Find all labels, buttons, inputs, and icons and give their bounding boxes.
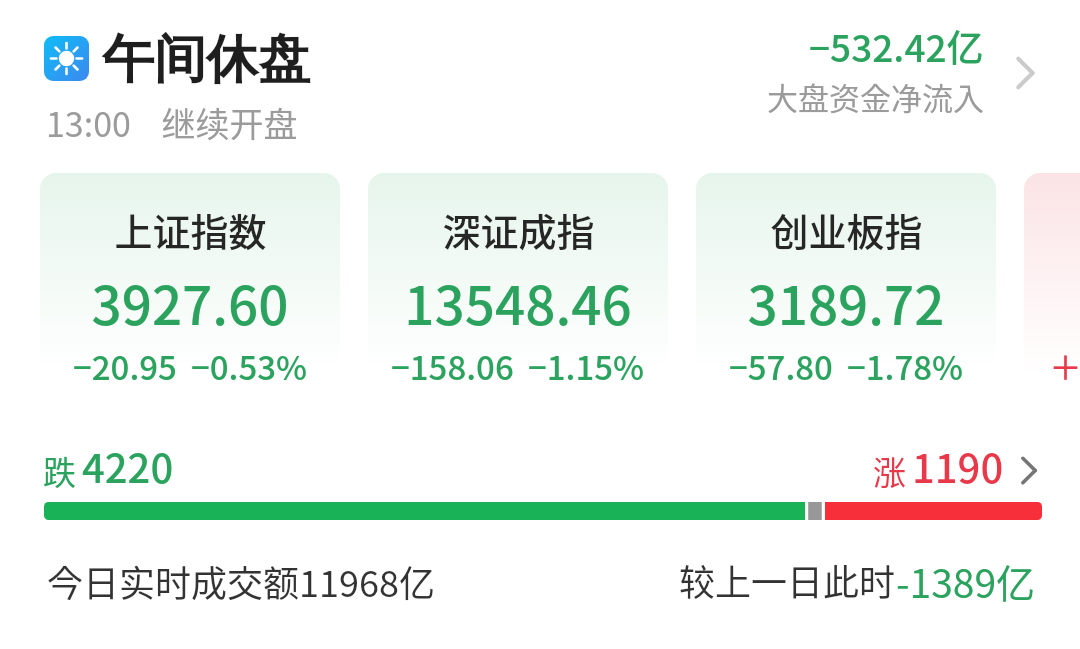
staticText: 1190 (912, 437, 1004, 495)
staticText: −20.95 (73, 342, 177, 390)
staticText: −57.80 (729, 342, 833, 390)
staticText: 跌 (43, 447, 76, 495)
staticText: 1487.30 (1075, 264, 1080, 341)
staticText: 午间休盘 (102, 27, 310, 93)
staticText: 较上一日此时 (679, 554, 896, 606)
other: Capital flow details (1015, 56, 1037, 90)
staticText: −1.15% (528, 342, 645, 390)
staticText: 今日实时成交额11968亿 (47, 555, 435, 607)
staticText: −158.06 (391, 342, 514, 390)
staticText: −532.42亿 (809, 19, 984, 73)
button[interactable]: 午间休盘 (36, 14, 366, 144)
button[interactable]: 上证指数 (40, 173, 340, 418)
button[interactable]: 深证成指 (368, 173, 668, 418)
staticText: 3927.60 (91, 264, 289, 341)
other: Advancers and decliners (1020, 456, 1039, 485)
staticText: −0.53% (191, 342, 308, 390)
staticText: -1389亿 (896, 553, 1036, 609)
staticText: 13548.46 (404, 264, 632, 341)
staticText: 13:00 继续开盘 (46, 98, 298, 147)
staticText: 4220 (82, 437, 174, 495)
button[interactable]: −532.42亿 (660, 8, 1050, 130)
staticText: 深证成指 (442, 202, 595, 257)
staticText: −1.78% (847, 342, 964, 390)
staticText: ＋12.65 (1049, 342, 1080, 390)
staticText: 3189.72 (747, 264, 945, 341)
staticText: 涨 (873, 447, 906, 495)
staticText: 上证指数 (114, 202, 267, 257)
staticText: 大盘资金净流入 (767, 74, 984, 119)
button[interactable]: 北证50 (1024, 173, 1080, 418)
button[interactable]: 跌 (43, 437, 1039, 495)
button[interactable]: 创业板指 (696, 173, 996, 418)
staticText: 创业板指 (770, 202, 923, 257)
